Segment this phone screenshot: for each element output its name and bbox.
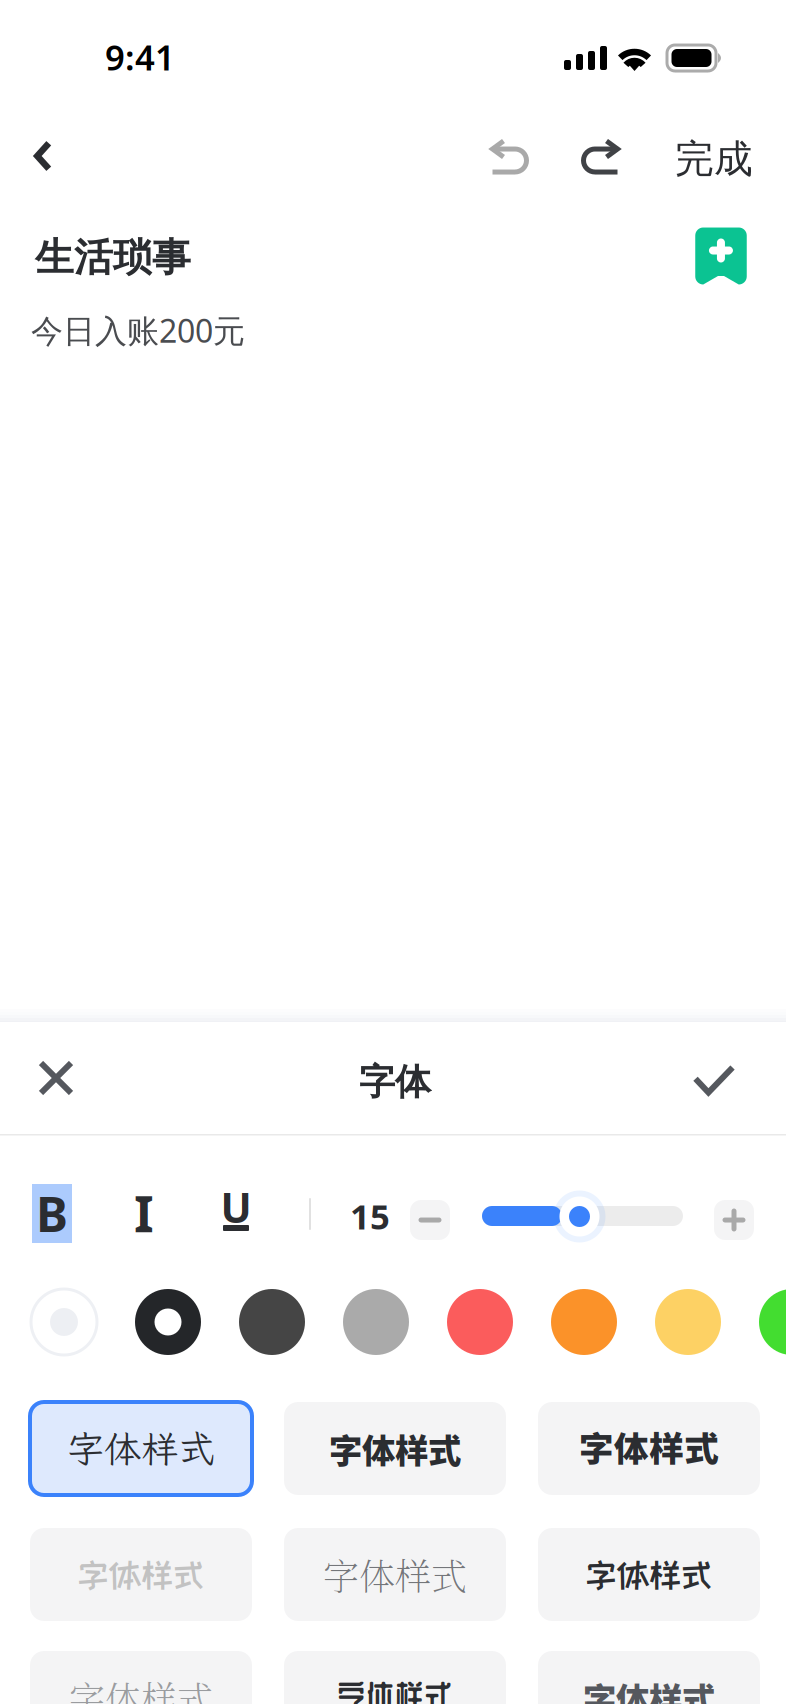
button[interactable]: Add bookmark bbox=[685, 220, 757, 292]
button[interactable]: Text colour bbox=[135, 1289, 201, 1355]
button[interactable]: Text colour bbox=[551, 1289, 617, 1355]
staticText: 字体样式 bbox=[77, 1557, 205, 1592]
staticText: 字体样式 bbox=[583, 1673, 715, 1704]
button[interactable]: I bbox=[122, 1183, 166, 1242]
button[interactable]: Text colour bbox=[655, 1289, 721, 1355]
button[interactable]: 字体样式 bbox=[538, 1402, 760, 1495]
button[interactable]: 字体样式 bbox=[30, 1402, 252, 1495]
staticText: 字体样式 bbox=[585, 1557, 713, 1592]
button[interactable]: Text colour bbox=[759, 1289, 786, 1355]
button[interactable]: Text colour bbox=[343, 1289, 409, 1355]
button[interactable]: U bbox=[216, 1184, 256, 1243]
button[interactable]: Undo bbox=[474, 121, 546, 193]
staticText: I bbox=[134, 1179, 154, 1246]
button[interactable]: Text colour bbox=[31, 1289, 97, 1355]
button[interactable]: 完成 bbox=[665, 123, 763, 195]
button[interactable]: Back bbox=[7, 120, 79, 192]
staticText: 今日入账200元 bbox=[31, 309, 245, 351]
staticText: 9:41 bbox=[105, 34, 175, 80]
button[interactable]: 字体样式 bbox=[284, 1651, 506, 1704]
staticText: B bbox=[36, 1182, 68, 1245]
staticText: 完成 bbox=[675, 135, 753, 183]
button[interactable]: B bbox=[32, 1184, 72, 1243]
button[interactable]: Confirm bbox=[676, 1042, 752, 1118]
staticText: 15 bbox=[350, 1193, 390, 1239]
staticText: 字体样式 bbox=[329, 1424, 461, 1473]
button[interactable]: Increase font size bbox=[714, 1200, 754, 1240]
button[interactable]: Redo bbox=[564, 121, 636, 193]
staticText: U bbox=[220, 1180, 251, 1234]
staticText: 字体样式 bbox=[337, 1679, 453, 1704]
button[interactable]: Text colour bbox=[239, 1289, 305, 1355]
button[interactable]: Close bbox=[18, 1040, 94, 1116]
button[interactable]: 字体样式 bbox=[284, 1528, 506, 1621]
staticText: 字体样式 bbox=[323, 1549, 467, 1600]
staticText: 生活琐事 bbox=[35, 234, 191, 281]
button[interactable]: 字体样式 bbox=[538, 1528, 760, 1621]
button[interactable]: 字体样式 bbox=[30, 1651, 252, 1704]
button[interactable]: Decrease font size bbox=[410, 1200, 450, 1240]
button[interactable]: 字体样式 bbox=[538, 1651, 760, 1704]
staticText: 字体样式 bbox=[69, 1672, 213, 1704]
button[interactable]: 字体样式 bbox=[30, 1528, 252, 1621]
button[interactable]: Text colour bbox=[447, 1289, 513, 1355]
staticText: 字体样式 bbox=[579, 1428, 719, 1469]
staticText: 字体样式 bbox=[67, 1424, 215, 1473]
staticText: 字体 bbox=[359, 1060, 431, 1104]
button[interactable]: 字体样式 bbox=[284, 1402, 506, 1495]
